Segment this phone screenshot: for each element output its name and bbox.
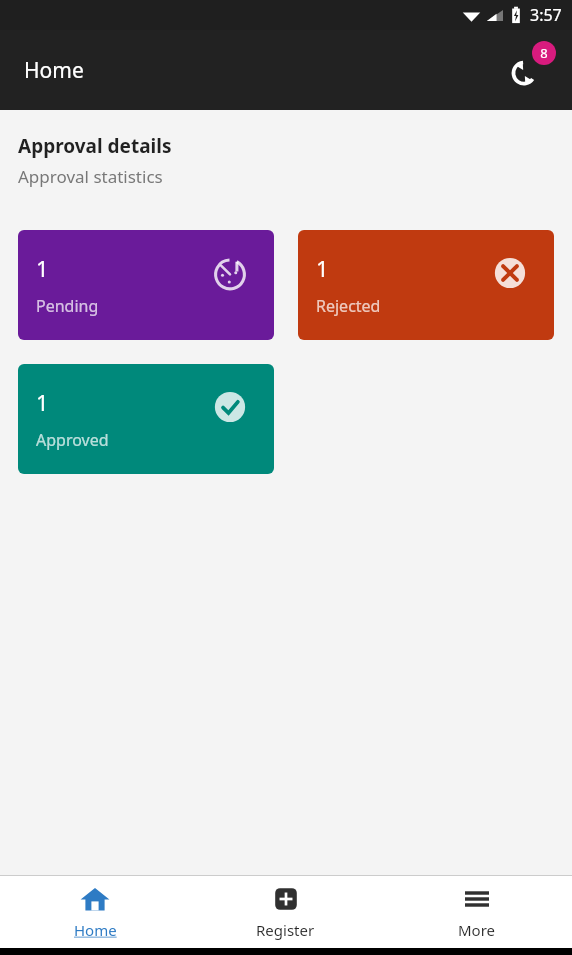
staticText: Approval statistics xyxy=(18,165,163,188)
staticText: 1 xyxy=(316,253,329,283)
button[interactable]: Sync, 8 pending xyxy=(498,42,554,98)
staticText: Rejected xyxy=(316,295,381,317)
staticText: Approval details xyxy=(18,133,172,159)
button[interactable]: Register xyxy=(190,876,381,940)
staticText: Approved xyxy=(36,429,109,451)
staticText: 3:57 xyxy=(530,4,562,26)
staticText: More xyxy=(458,920,496,940)
staticText: 8 xyxy=(540,44,548,62)
staticText: Pending xyxy=(36,295,99,317)
button[interactable]: More xyxy=(381,876,572,940)
button[interactable]: 1 xyxy=(298,230,554,340)
staticText: Register xyxy=(256,920,315,940)
button[interactable]: 1 xyxy=(18,364,274,474)
staticText: 1 xyxy=(36,387,49,417)
button[interactable]: 1 xyxy=(18,230,274,340)
staticText: 1 xyxy=(36,253,49,283)
button[interactable]: Home xyxy=(0,876,190,940)
staticText: Home xyxy=(74,920,117,940)
staticText: Home xyxy=(24,56,84,85)
